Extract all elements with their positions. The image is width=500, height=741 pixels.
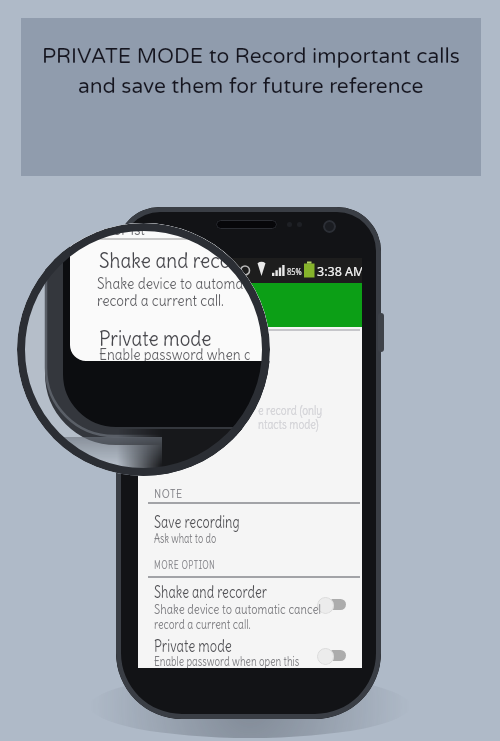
- button[interactable]: [327, 599, 346, 610]
- button[interactable]: [17, 223, 270, 476]
- button[interactable]: [21, 18, 481, 176]
- button[interactable]: [138, 283, 362, 327]
- button[interactable]: [138, 258, 362, 668]
- button[interactable]: [327, 650, 346, 661]
